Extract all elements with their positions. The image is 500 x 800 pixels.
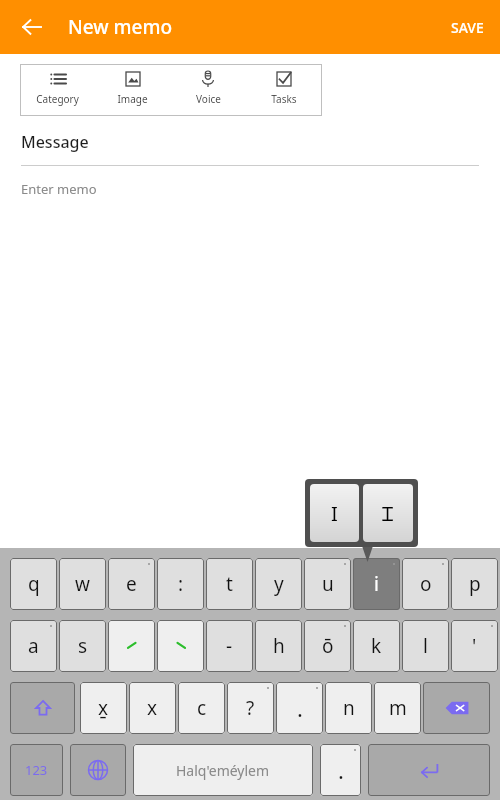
button[interactable]: k	[353, 620, 400, 672]
staticText: -	[226, 633, 233, 659]
button[interactable]: Halq'eméylem	[133, 744, 313, 796]
button[interactable]	[157, 620, 204, 672]
staticText: Ɪ	[382, 500, 394, 527]
staticText: I	[331, 500, 338, 527]
staticText: New memo	[68, 14, 173, 40]
button[interactable]: x	[129, 682, 176, 734]
button[interactable]: p	[451, 558, 498, 610]
staticText: 123	[25, 761, 48, 779]
staticText: u	[322, 571, 334, 597]
button[interactable]: s	[59, 620, 106, 672]
button[interactable]: Ɪ	[363, 484, 413, 542]
button[interactable]: Image	[95, 64, 170, 116]
staticText: h	[273, 633, 285, 659]
staticText: o	[420, 571, 432, 597]
staticText: .	[338, 755, 344, 785]
button[interactable]: c	[178, 682, 225, 734]
button[interactable]: x̱	[80, 682, 127, 734]
button[interactable]: h	[255, 620, 302, 672]
staticText: :	[178, 571, 184, 597]
staticText: a	[28, 633, 39, 659]
button[interactable]: .	[276, 682, 323, 734]
button[interactable]: t	[206, 558, 253, 610]
staticText: n	[343, 695, 355, 721]
button[interactable]: Tasks	[246, 64, 322, 116]
staticText: Image	[117, 92, 148, 106]
button[interactable]	[108, 620, 155, 672]
staticText: x	[147, 695, 158, 721]
button[interactable]: m	[374, 682, 421, 734]
button[interactable]: .	[320, 744, 361, 796]
staticText: w	[75, 571, 90, 597]
staticText: e	[126, 571, 137, 597]
button[interactable]: a	[10, 620, 57, 672]
staticText: l	[423, 633, 428, 659]
button[interactable]: n	[325, 682, 372, 734]
staticText: m	[389, 695, 407, 721]
button[interactable]: u	[304, 558, 351, 610]
staticText: p	[469, 571, 481, 597]
button[interactable]: ?	[227, 682, 274, 734]
staticText: c	[197, 695, 207, 721]
button[interactable]: o	[402, 558, 449, 610]
staticText: SAVE	[451, 18, 484, 37]
button[interactable]: e	[108, 558, 155, 610]
staticText: Category	[36, 92, 79, 106]
staticText: k	[371, 633, 382, 659]
button[interactable]: l	[402, 620, 449, 672]
staticText: .	[297, 693, 303, 723]
button[interactable]: '	[451, 620, 498, 672]
button[interactable]: Change language	[70, 744, 126, 796]
button[interactable]: Category	[20, 64, 95, 116]
staticText: t	[226, 571, 233, 597]
button[interactable]: :	[157, 558, 204, 610]
button[interactable]: SAVE	[435, 6, 500, 49]
staticText: q	[28, 571, 40, 597]
staticText: x̱	[98, 695, 109, 721]
staticText: y	[274, 571, 284, 597]
button[interactable]: Backspace	[423, 682, 490, 734]
button[interactable]: Enter	[368, 744, 490, 796]
button[interactable]: Voice	[170, 64, 246, 116]
staticText: i	[374, 571, 379, 597]
staticText: Tasks	[271, 92, 297, 106]
button[interactable]: 123	[10, 744, 63, 796]
button[interactable]: Back	[14, 9, 50, 45]
staticText: Voice	[196, 92, 221, 106]
staticText: ō	[322, 633, 334, 659]
staticText: ?	[246, 695, 255, 721]
button[interactable]: Key alternatives	[310, 484, 413, 542]
staticText: Message	[21, 131, 89, 153]
button[interactable]: ō	[304, 620, 351, 672]
button[interactable]: Shift	[10, 682, 75, 734]
button[interactable]: q	[10, 558, 57, 610]
button[interactable]: I	[310, 484, 359, 542]
button[interactable]: w	[59, 558, 106, 610]
button[interactable]: y	[255, 558, 302, 610]
staticText: '	[472, 633, 477, 659]
staticText: Halq'eméylem	[176, 761, 270, 780]
button[interactable]: -	[206, 620, 253, 672]
staticText: Enter memo	[21, 180, 97, 198]
staticText: s	[78, 633, 88, 659]
button[interactable]: i	[353, 558, 400, 610]
